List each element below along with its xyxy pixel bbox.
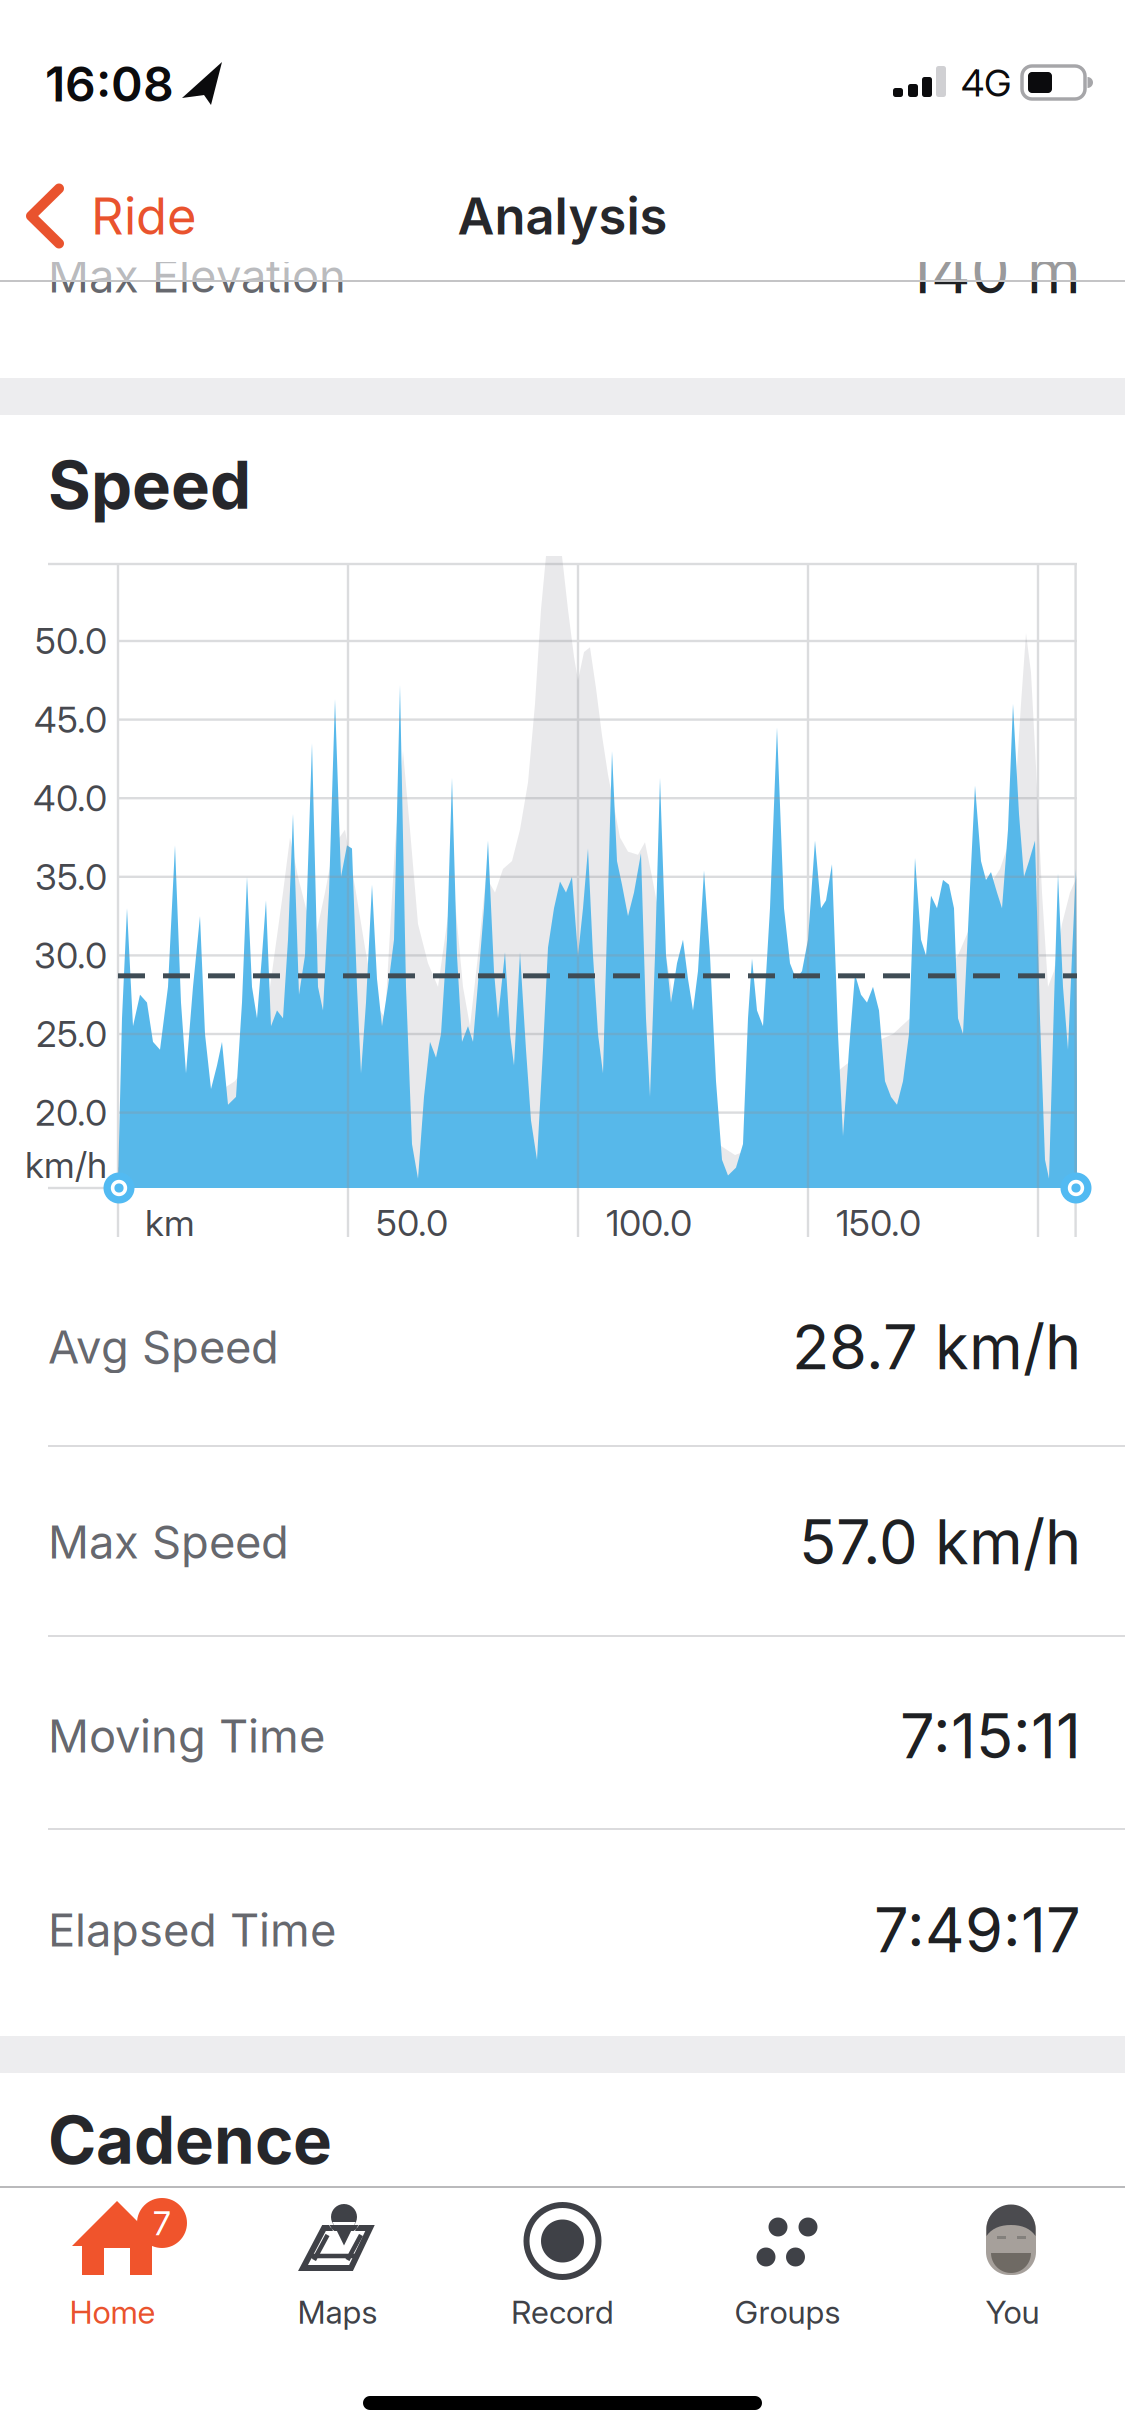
staticText: 50.0 bbox=[376, 1202, 448, 1244]
staticText: Elapsed Time bbox=[48, 1903, 336, 1957]
staticText: 4G bbox=[961, 61, 1011, 105]
staticText: 30.0 bbox=[34, 934, 107, 977]
staticText: Record bbox=[511, 2293, 614, 2331]
button[interactable]: Record bbox=[450, 2188, 675, 2398]
button[interactable]: 7 bbox=[0, 2188, 225, 2398]
staticText: 7:49:17 bbox=[874, 1894, 1081, 1966]
staticText: You bbox=[985, 2293, 1039, 2331]
staticText: Speed bbox=[48, 446, 251, 524]
staticText: 16:08 bbox=[45, 56, 174, 112]
button[interactable]: Groups bbox=[675, 2188, 900, 2398]
staticText: Ride bbox=[91, 186, 197, 246]
staticText: 28.7 km/h bbox=[792, 1311, 1081, 1383]
staticText: 20.0 bbox=[35, 1091, 107, 1134]
staticText: 150.0 bbox=[836, 1202, 921, 1244]
staticText: 40.0 bbox=[33, 777, 107, 819]
staticText: Max Speed bbox=[48, 1515, 289, 1569]
staticText: 50.0 bbox=[35, 620, 107, 662]
staticText: Groups bbox=[734, 2293, 840, 2331]
staticText: Moving Time bbox=[48, 1709, 325, 1763]
staticText: Max Elevation bbox=[48, 249, 346, 303]
staticText: 35.0 bbox=[35, 856, 107, 898]
staticText: Home bbox=[69, 2293, 155, 2331]
staticText: 140 m bbox=[906, 235, 1081, 307]
staticText: 57.0 km/h bbox=[799, 1506, 1081, 1578]
button[interactable]: Maps bbox=[225, 2188, 450, 2398]
staticText: 100.0 bbox=[606, 1202, 692, 1244]
button[interactable]: You bbox=[900, 2188, 1125, 2398]
staticText: 45.0 bbox=[34, 698, 107, 741]
button[interactable]: Back bbox=[28, 181, 197, 251]
staticText: km/h bbox=[25, 1144, 107, 1186]
staticText: km bbox=[145, 1202, 195, 1244]
staticText: Analysis bbox=[457, 186, 667, 246]
staticText: Cadence bbox=[48, 2101, 332, 2179]
staticText: 7 bbox=[153, 2203, 171, 2243]
staticText: Maps bbox=[297, 2293, 377, 2331]
staticText: Avg Speed bbox=[48, 1320, 279, 1374]
staticText: 25.0 bbox=[36, 1013, 107, 1055]
staticText: 7:15:11 bbox=[900, 1700, 1081, 1772]
